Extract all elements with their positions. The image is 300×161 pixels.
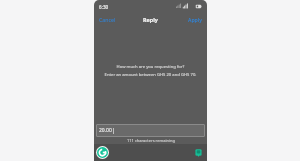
staticText: 6:30 [99, 4, 109, 10]
staticText: 111 characters remaining [127, 138, 175, 143]
button[interactable]: Grammarly keyboard [96, 146, 109, 159]
button[interactable]: 20.00 [96, 124, 205, 137]
staticText: Cancel [99, 16, 116, 23]
staticText: 20.00 [99, 127, 112, 134]
button[interactable]: Cancel [94, 14, 121, 25]
staticText: Enter an amount between GHS 20 and GHS 7… [100, 72, 201, 78]
button[interactable]: Emoji [193, 147, 204, 158]
staticText: How much are you requesting for? [100, 64, 201, 70]
staticText: Apply [188, 16, 202, 23]
button[interactable]: Apply [183, 14, 207, 25]
staticText: Reply [143, 16, 158, 23]
